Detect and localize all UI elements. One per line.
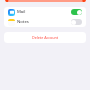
button[interactable]: Delete Account: [4, 32, 86, 43]
staticText: Notes: [17, 19, 29, 25]
button[interactable]: Mail: [4, 7, 86, 17]
button[interactable]: Switch on: [71, 9, 82, 15]
staticText: Mail: [17, 9, 26, 15]
staticText: Delete Account: [32, 35, 59, 40]
button[interactable]: Switch off: [71, 19, 82, 25]
button[interactable]: Notes: [4, 17, 86, 27]
